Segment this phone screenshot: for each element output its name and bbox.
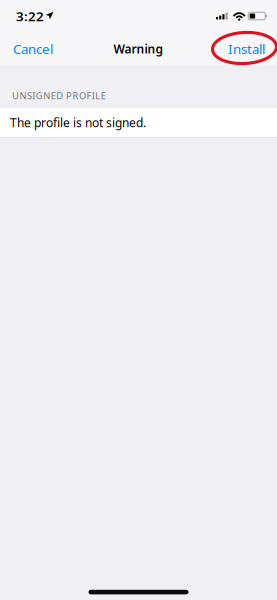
staticText: Warning — [113, 41, 163, 57]
button[interactable]: Install — [219, 32, 274, 66]
staticText: UNSIGNED PROFILE — [12, 89, 106, 102]
button[interactable]: The profile is not signed. — [0, 107, 277, 138]
staticText: Install — [228, 40, 265, 58]
staticText: Cancel — [13, 40, 53, 58]
staticText: 3:22 — [16, 7, 44, 25]
staticText: The profile is not signed. — [10, 114, 146, 130]
button[interactable]: Cancel — [4, 32, 62, 66]
